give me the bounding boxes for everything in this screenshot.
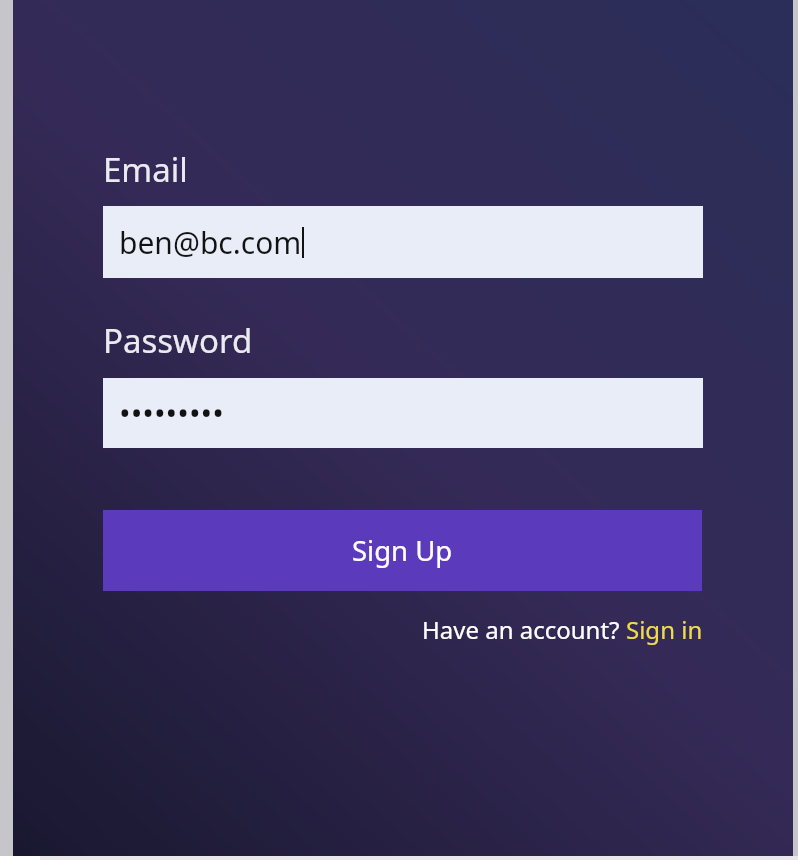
staticText: ben@bc.com [119,222,302,263]
staticText: Email [103,147,188,192]
button[interactable]: Sign in [626,613,703,646]
staticText: Password [103,318,253,363]
staticText: Have an account? [422,613,626,646]
staticText: Sign Up [352,532,453,569]
button[interactable]: ••••••••• [103,378,703,448]
button[interactable]: ben@bc.com [103,206,703,278]
button[interactable]: Sign Up [103,510,702,591]
staticText: ••••••••• [119,392,224,434]
